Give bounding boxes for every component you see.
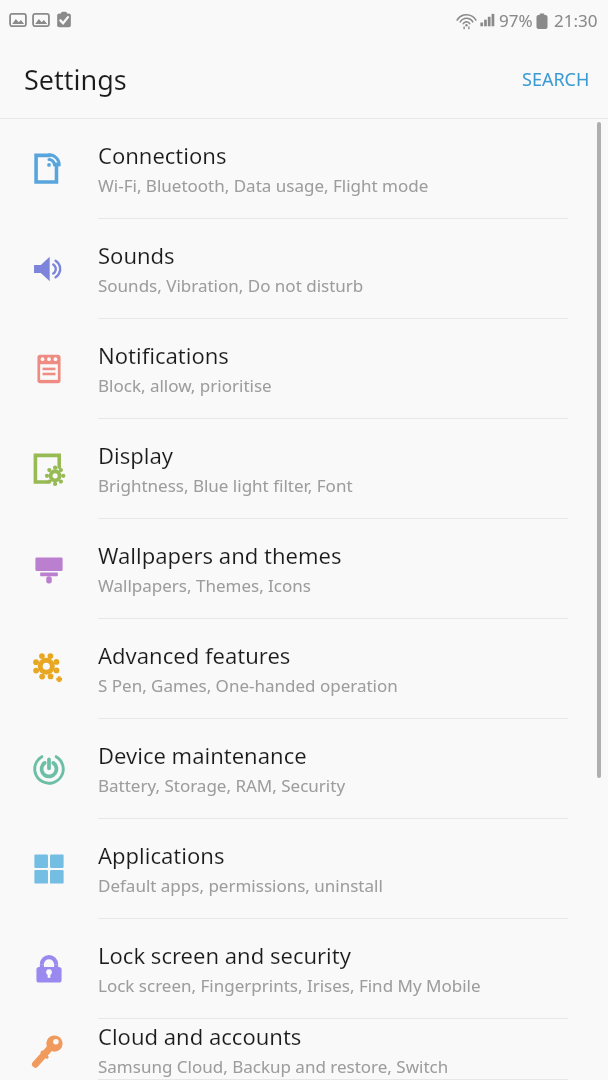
staticText: Samsung Cloud, Backup and restore, Switc… xyxy=(98,1055,449,1078)
button[interactable]: Display xyxy=(0,419,608,519)
staticText: Wallpapers and themes xyxy=(98,540,342,570)
staticText: Sounds xyxy=(98,240,175,270)
staticText: Cloud and accounts xyxy=(98,1021,302,1051)
button[interactable]: Advanced features xyxy=(0,619,608,719)
button[interactable]: Device maintenance xyxy=(0,719,608,819)
button[interactable]: SEARCH xyxy=(504,53,608,106)
staticText: Lock screen, Fingerprints, Irises, Find … xyxy=(98,974,481,997)
staticText: 97% xyxy=(499,9,533,32)
staticText: Connections xyxy=(98,140,227,170)
staticText: Wi-Fi, Bluetooth, Data usage, Flight mod… xyxy=(98,174,429,197)
button[interactable]: Cloud and accounts xyxy=(0,1019,608,1080)
staticText: Applications xyxy=(98,840,225,870)
button[interactable]: Notifications xyxy=(0,319,608,419)
button[interactable]: Sounds xyxy=(0,219,608,319)
staticText: Device maintenance xyxy=(98,740,307,770)
staticText: Settings xyxy=(24,61,127,98)
staticText: SEARCH xyxy=(522,67,590,92)
staticText: Display xyxy=(98,440,174,470)
button[interactable]: Lock screen and security xyxy=(0,919,608,1019)
staticText: 21:30 xyxy=(554,9,598,32)
staticText: Lock screen and security xyxy=(98,940,351,970)
staticText: Default apps, permissions, uninstall xyxy=(98,874,383,897)
staticText: S Pen, Games, One-handed operation xyxy=(98,674,398,697)
staticText: Wallpapers, Themes, Icons xyxy=(98,574,311,597)
button[interactable]: Wallpapers and themes xyxy=(0,519,608,619)
staticText: Notifications xyxy=(98,340,229,370)
staticText: Advanced features xyxy=(98,640,291,670)
button[interactable]: Applications xyxy=(0,819,608,919)
staticText: Sounds, Vibration, Do not disturb xyxy=(98,274,364,297)
staticText: Brightness, Blue light filter, Font xyxy=(98,474,353,497)
staticText: Block, allow, prioritise xyxy=(98,374,272,397)
button[interactable]: Connections xyxy=(0,119,608,219)
staticText: Battery, Storage, RAM, Security xyxy=(98,774,346,797)
